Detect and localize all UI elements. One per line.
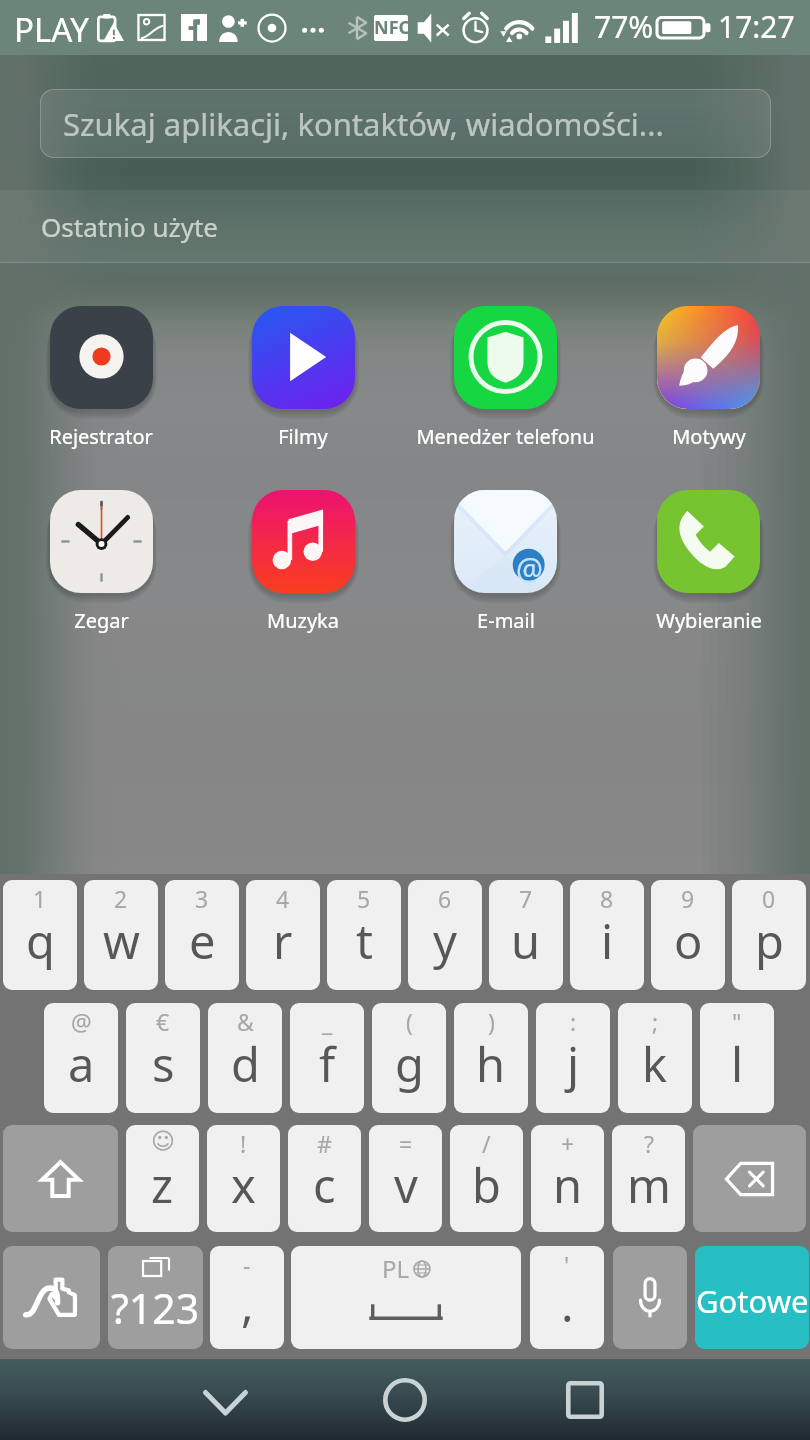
staticText: ☺: [151, 1128, 175, 1155]
staticText: s: [152, 1032, 175, 1096]
staticText: 9: [681, 883, 695, 914]
button[interactable]: Handwriting: [3, 1246, 100, 1349]
button[interactable]: Menedżer telefonu: [404, 306, 607, 450]
staticText: Muzyka: [267, 607, 339, 634]
button[interactable]: ☺: [126, 1125, 199, 1232]
staticText: 4: [276, 883, 290, 914]
staticText: u: [511, 909, 541, 973]
staticText: =: [399, 1128, 413, 1159]
staticText: !: [240, 1128, 247, 1159]
button[interactable]: #: [288, 1125, 361, 1232]
staticText: 1: [33, 883, 47, 914]
staticText: +: [561, 1128, 575, 1159]
button[interactable]: _: [290, 1003, 364, 1113]
button[interactable]: -: [210, 1246, 284, 1349]
staticText: Gotowe: [696, 1280, 809, 1322]
staticText: v: [394, 1153, 418, 1217]
button[interactable]: @: [404, 490, 607, 634]
staticText: ": [732, 1006, 742, 1037]
staticText: PLAY: [14, 7, 90, 52]
staticText: k: [642, 1032, 668, 1096]
staticText: n: [553, 1153, 583, 1217]
button[interactable]: 9: [651, 880, 725, 990]
button[interactable]: 0: [732, 880, 806, 990]
button[interactable]: Rejestrator: [0, 306, 202, 450]
staticText: :: [570, 1006, 577, 1037]
button[interactable]: +: [531, 1125, 604, 1232]
staticText: z: [151, 1153, 174, 1217]
staticText: Filmy: [278, 423, 328, 450]
staticText: ): [488, 1006, 495, 1037]
staticText: a: [68, 1032, 95, 1096]
button[interactable]: Zegar: [0, 490, 202, 634]
button[interactable]: 1: [3, 880, 77, 990]
staticText: 8: [600, 883, 614, 914]
button[interactable]: Shift: [3, 1125, 118, 1232]
button[interactable]: ": [700, 1003, 774, 1113]
staticText: 17:27: [718, 6, 795, 47]
button[interactable]: ;: [618, 1003, 692, 1113]
staticText: Zegar: [74, 607, 129, 634]
staticText: €: [156, 1006, 170, 1037]
staticText: q: [26, 909, 55, 973]
staticText: @: [71, 1006, 92, 1037]
staticText: ': [564, 1249, 570, 1280]
button[interactable]: (: [372, 1003, 446, 1113]
button[interactable]: Szukaj aplikacji, kontaktów, wiadomości.…: [40, 89, 771, 158]
button[interactable]: Filmy: [202, 306, 404, 450]
button[interactable]: Voice input: [613, 1246, 687, 1349]
button[interactable]: Motywy: [607, 306, 810, 450]
button[interactable]: Recent apps: [525, 1359, 645, 1440]
button[interactable]: 6: [408, 880, 482, 990]
staticText: Szukaj aplikacji, kontaktów, wiadomości.…: [63, 103, 664, 145]
button[interactable]: ': [530, 1246, 604, 1349]
button[interactable]: !: [207, 1125, 280, 1232]
staticText: h: [476, 1032, 506, 1096]
button[interactable]: 8: [570, 880, 644, 990]
button[interactable]: Muzyka: [202, 490, 404, 634]
staticText: d: [231, 1032, 260, 1096]
staticText: 2: [114, 883, 128, 914]
staticText: /: [482, 1128, 491, 1159]
button[interactable]: &: [208, 1003, 282, 1113]
button[interactable]: €: [126, 1003, 200, 1113]
staticText: PL: [382, 1252, 410, 1285]
button[interactable]: [695, 1246, 809, 1349]
staticText: Motywy: [672, 423, 746, 450]
button[interactable]: 2: [84, 880, 158, 990]
button[interactable]: 4: [246, 880, 320, 990]
button[interactable]: Hide keyboard: [165, 1359, 285, 1440]
button[interactable]: 7: [489, 880, 563, 990]
button[interactable]: ?: [612, 1125, 685, 1232]
staticText: l: [731, 1032, 744, 1096]
button[interactable]: Backspace: [693, 1125, 806, 1232]
button[interactable]: =: [369, 1125, 442, 1232]
button[interactable]: Wybieranie: [607, 490, 810, 634]
staticText: (: [406, 1006, 413, 1037]
staticText: 6: [438, 883, 452, 914]
button[interactable]: /: [450, 1125, 523, 1232]
button[interactable]: Space: [291, 1246, 521, 1349]
staticText: Ostatnio użyte: [41, 209, 218, 244]
button[interactable]: ): [454, 1003, 528, 1113]
staticText: b: [472, 1153, 501, 1217]
staticText: 7: [519, 883, 533, 914]
staticText: @: [516, 548, 543, 589]
staticText: 5: [357, 883, 371, 914]
staticText: m: [627, 1153, 671, 1217]
staticText: Rejestrator: [49, 423, 153, 450]
button[interactable]: @: [44, 1003, 118, 1113]
staticText: NFC: [374, 15, 408, 40]
button[interactable]: Home: [345, 1359, 465, 1440]
staticText: ,: [241, 1272, 254, 1336]
staticText: ?123: [111, 1280, 200, 1336]
button[interactable]: 3: [165, 880, 239, 990]
button[interactable]: :: [536, 1003, 610, 1113]
staticText: x: [231, 1153, 256, 1217]
button[interactable]: ?123: [108, 1246, 203, 1349]
staticText: .: [561, 1272, 574, 1336]
staticText: p: [755, 909, 784, 973]
button[interactable]: 5: [327, 880, 401, 990]
staticText: E-mail: [477, 607, 535, 634]
staticText: 77%: [594, 6, 654, 47]
